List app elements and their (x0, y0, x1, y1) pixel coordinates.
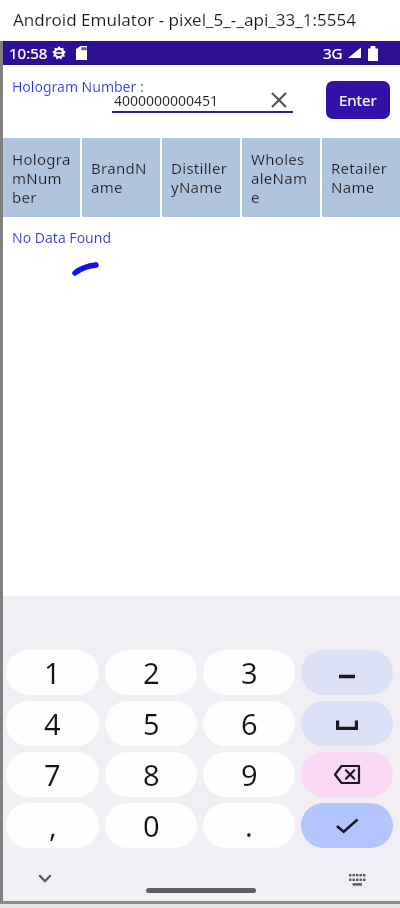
staticText: 6 (241, 704, 258, 743)
button[interactable]: 6 (203, 701, 295, 746)
button[interactable]: Enter (326, 81, 390, 119)
staticText: No Data Found (12, 228, 112, 247)
button[interactable]: back (301, 752, 393, 797)
staticText: 9 (241, 755, 258, 794)
button[interactable]: 1 (6, 650, 99, 695)
button[interactable]: 5 (105, 701, 197, 746)
button[interactable]: Switch keyboard (342, 864, 372, 894)
staticText: 10:58 (9, 43, 48, 63)
staticText: Hologram Number : (12, 77, 144, 96)
staticText: DistilleryName (171, 158, 231, 197)
button[interactable]: Clear text (266, 87, 292, 113)
staticText: 4 (44, 704, 61, 743)
staticText: 8 (143, 755, 160, 794)
button[interactable]: 3 (203, 650, 295, 695)
staticText: . (245, 806, 253, 845)
button[interactable]: minus (301, 650, 393, 695)
staticText: WholesaleName (251, 149, 311, 207)
staticText: 7 (44, 755, 61, 794)
staticText: 3G (323, 43, 343, 63)
staticText: 2 (143, 653, 160, 692)
button[interactable]: 8 (105, 752, 197, 797)
staticText: 0 (143, 806, 160, 845)
staticText: 3 (241, 653, 258, 692)
button[interactable]: 2 (105, 650, 197, 695)
button[interactable]: . (203, 803, 295, 848)
button[interactable]: Hide keyboard (30, 863, 60, 893)
button[interactable]: ok (301, 803, 393, 848)
staticText: 5 (143, 704, 160, 743)
button[interactable]: 4 (6, 701, 99, 746)
staticText: Enter (339, 90, 377, 110)
button[interactable]: space (301, 701, 393, 746)
staticText: 1 (44, 653, 61, 692)
staticText: RetailerName (331, 158, 391, 197)
button[interactable]: , (6, 803, 99, 848)
staticText: HologramNumber (12, 149, 71, 207)
staticText: 4000000000451 (114, 91, 219, 110)
staticText: , (49, 806, 57, 845)
button[interactable]: 7 (6, 752, 99, 797)
button[interactable]: 9 (203, 752, 295, 797)
staticText: BrandName (91, 158, 151, 197)
staticText: Android Emulator - pixel_5_-_api_33_1:55… (13, 8, 356, 31)
button[interactable]: 0 (105, 803, 197, 848)
